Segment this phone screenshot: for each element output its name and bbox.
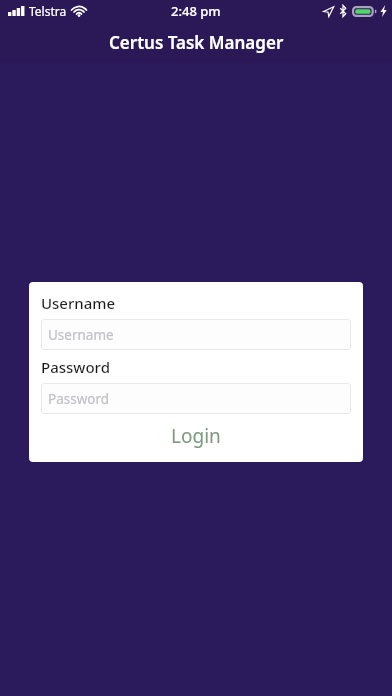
staticText: Password: [41, 357, 110, 377]
staticText: Username: [41, 293, 116, 313]
button[interactable]: Login: [41, 414, 351, 458]
button[interactable]: Username: [41, 319, 351, 350]
other: Cellular signal: [8, 6, 25, 16]
staticText: Login: [171, 423, 221, 449]
button[interactable]: Password: [41, 383, 351, 414]
staticText: Password: [48, 390, 110, 408]
other: Battery: [352, 6, 377, 17]
other: Location: [323, 6, 334, 17]
other: Charging: [380, 5, 387, 17]
staticText: Certus Task Manager: [109, 31, 284, 54]
staticText: 2:48 pm: [171, 2, 221, 20]
staticText: Username: [48, 326, 114, 344]
other: Wi-Fi: [72, 6, 86, 17]
other: Bluetooth: [339, 5, 347, 17]
staticText: Telstra: [29, 3, 67, 19]
